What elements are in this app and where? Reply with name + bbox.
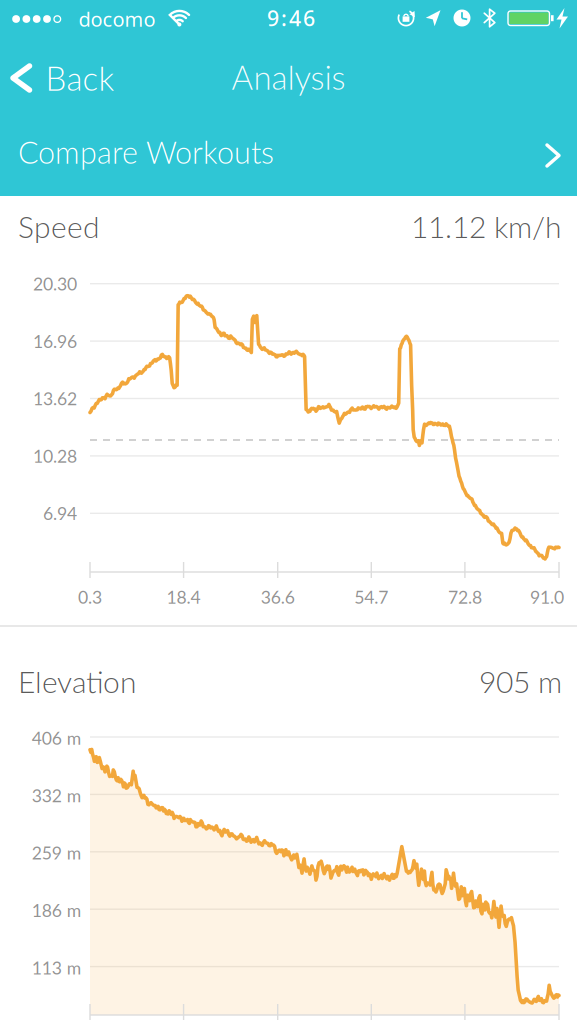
- staticText: 18.4: [167, 586, 201, 607]
- staticText: 113 m: [32, 957, 81, 978]
- staticText: 406 m: [32, 727, 81, 748]
- staticText: 10.28: [33, 445, 77, 466]
- button[interactable]: Compare Workouts: [0, 115, 577, 196]
- staticText: 13.62: [33, 388, 77, 409]
- staticText: 259 m: [32, 842, 81, 863]
- staticText: Speed: [18, 208, 100, 244]
- staticText: 6.94: [43, 503, 77, 524]
- staticText: 54.7: [354, 586, 388, 607]
- staticText: 905 m: [479, 663, 562, 699]
- staticText: 16.96: [33, 330, 77, 352]
- staticText: 11.12 km/h: [411, 208, 562, 244]
- staticText: 20.30: [33, 273, 77, 294]
- staticText: 332 m: [32, 785, 81, 806]
- staticText: Elevation: [18, 663, 137, 699]
- staticText: Back: [45, 58, 114, 98]
- staticText: Analysis: [231, 57, 345, 97]
- button[interactable]: Back: [0, 52, 130, 104]
- staticText: 36.6: [261, 586, 295, 607]
- staticText: 72.8: [448, 586, 482, 607]
- staticText: 0.3: [78, 586, 102, 607]
- staticText: 186 m: [32, 900, 81, 921]
- staticText: 9:46: [267, 4, 315, 32]
- staticText: docomo: [78, 6, 155, 32]
- staticText: Compare Workouts: [18, 134, 274, 170]
- staticText: 91.0: [530, 586, 564, 607]
